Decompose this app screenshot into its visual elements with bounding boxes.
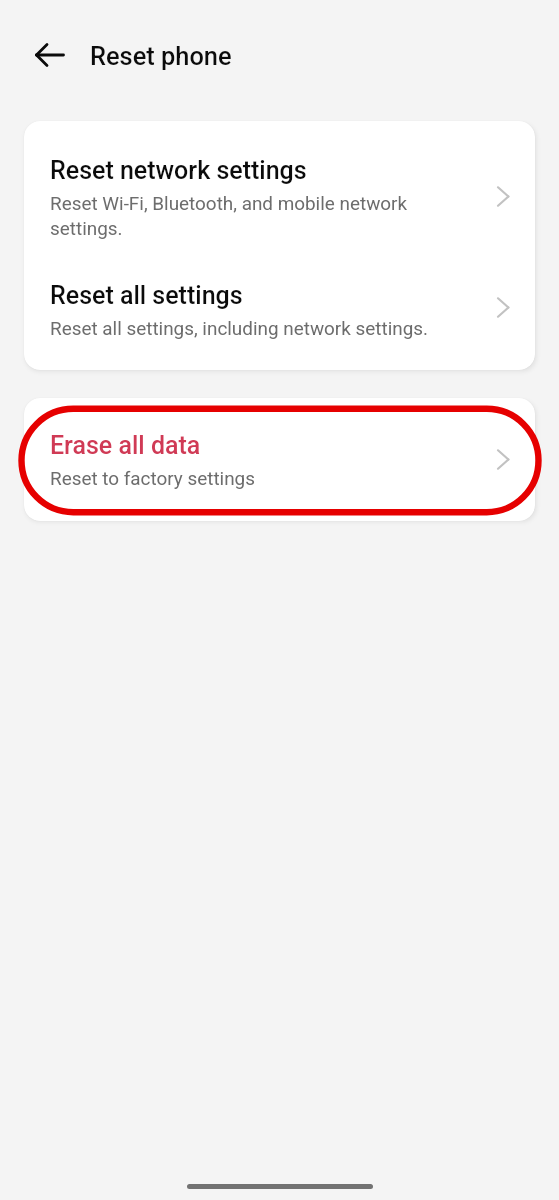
staticText: Reset all settings, including network se…	[50, 317, 468, 339]
staticText: Reset all settings	[50, 281, 243, 310]
staticText: Reset phone	[90, 41, 232, 71]
button[interactable]: Navigate up	[24, 29, 76, 81]
button[interactable]: Reset network settings	[24, 121, 535, 246]
staticText: Erase all data	[50, 431, 201, 460]
button[interactable]: Erase all data	[24, 398, 535, 521]
staticText: Reset network settings	[50, 156, 307, 185]
button[interactable]: Reset all settings	[24, 246, 535, 371]
staticText: Reset to factory settings	[50, 467, 468, 489]
staticText: Reset Wi-Fi, Bluetooth, and mobile netwo…	[50, 192, 468, 239]
